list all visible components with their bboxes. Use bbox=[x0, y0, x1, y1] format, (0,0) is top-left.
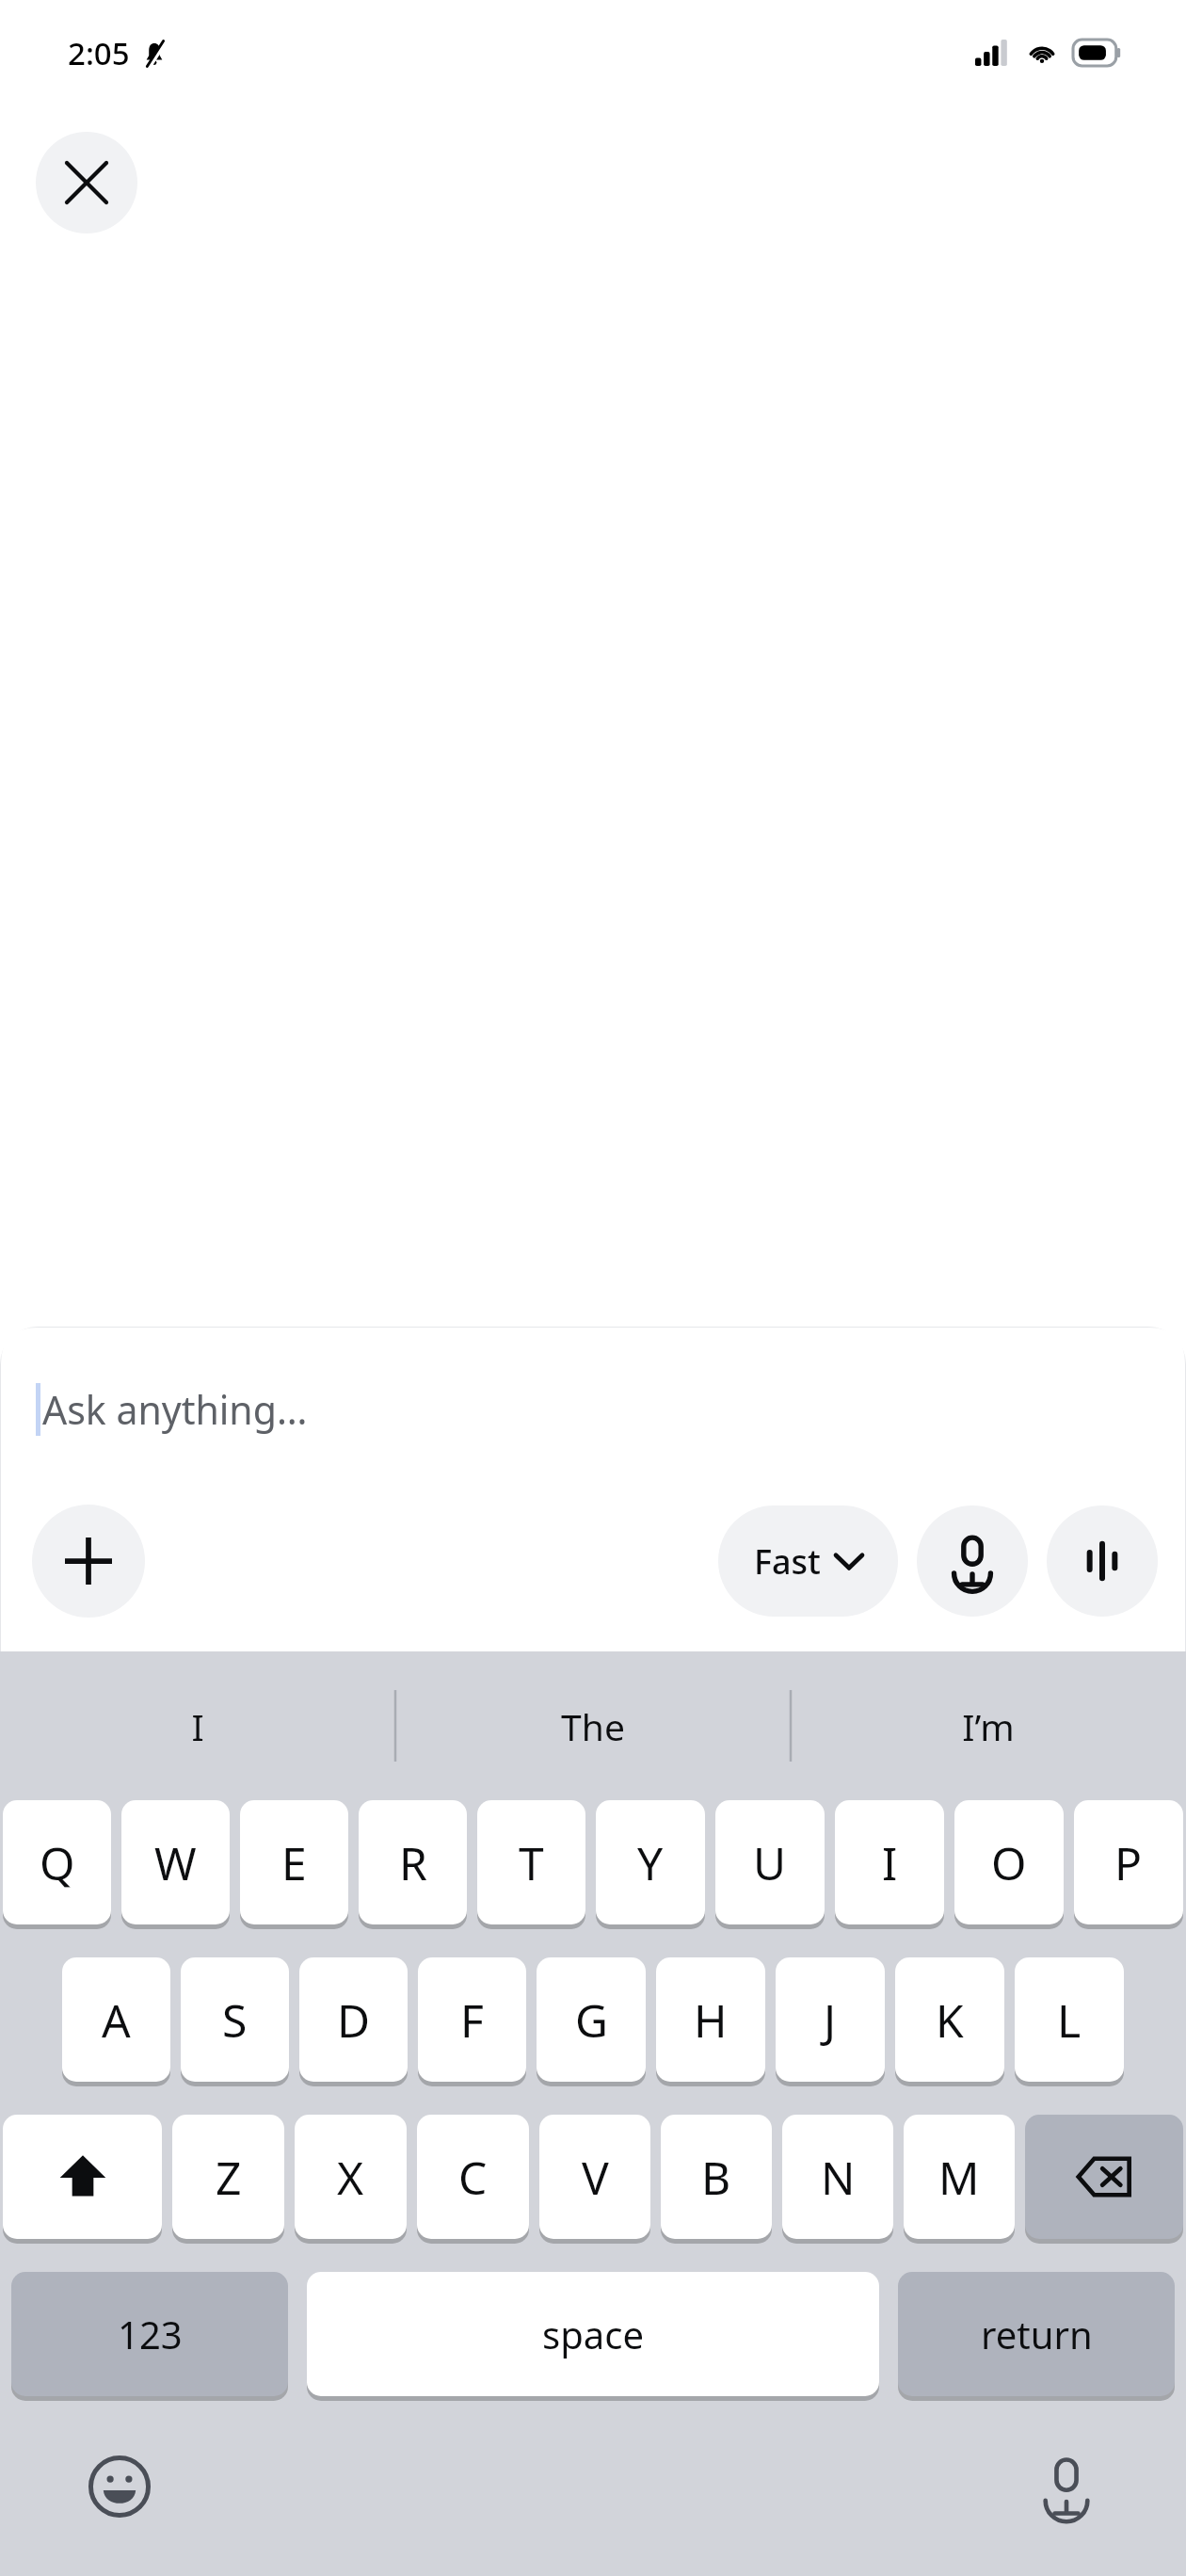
button[interactable]: Add attachment bbox=[32, 1505, 145, 1618]
button[interactable]: P bbox=[1074, 1800, 1183, 1924]
button[interactable]: The bbox=[395, 1651, 791, 1800]
staticText: O bbox=[991, 1832, 1027, 1893]
staticText: B bbox=[701, 2147, 731, 2208]
staticText: E bbox=[281, 1832, 307, 1893]
staticText: H bbox=[694, 1989, 728, 2051]
staticText: T bbox=[519, 1832, 544, 1893]
staticText: F bbox=[460, 1989, 484, 2051]
other: Backspace bbox=[1025, 2115, 1183, 2244]
staticText: P bbox=[1114, 1832, 1143, 1893]
staticText: N bbox=[821, 2147, 856, 2208]
button[interactable]: Z bbox=[172, 2115, 284, 2239]
button[interactable]: S bbox=[181, 1957, 289, 2082]
button[interactable]: space bbox=[307, 2272, 879, 2396]
button[interactable]: Q bbox=[3, 1800, 111, 1924]
button[interactable]: Live voice mode bbox=[1047, 1505, 1158, 1617]
button[interactable]: return bbox=[898, 2272, 1175, 2396]
staticText: 2:05 bbox=[68, 32, 130, 74]
staticText: J bbox=[824, 1989, 837, 2051]
button[interactable]: X bbox=[295, 2115, 407, 2239]
staticText: 123 bbox=[118, 2309, 183, 2359]
staticText: I’m bbox=[962, 1701, 1015, 1751]
button[interactable]: E bbox=[240, 1800, 348, 1924]
button[interactable]: I’m bbox=[791, 1651, 1186, 1800]
button[interactable]: D bbox=[299, 1957, 408, 2082]
button[interactable]: Y bbox=[596, 1800, 705, 1924]
button[interactable]: V bbox=[539, 2115, 650, 2239]
staticText: Fast bbox=[754, 1538, 821, 1585]
staticText: M bbox=[938, 2147, 980, 2208]
button[interactable]: I bbox=[0, 1651, 395, 1800]
staticText: Z bbox=[216, 2147, 242, 2208]
staticText: L bbox=[1057, 1989, 1082, 2051]
staticText: W bbox=[154, 1832, 197, 1893]
button[interactable]: M bbox=[904, 2115, 1015, 2239]
button[interactable]: Close bbox=[36, 132, 137, 233]
button[interactable]: L bbox=[1015, 1957, 1124, 2082]
button[interactable]: N bbox=[782, 2115, 893, 2239]
staticText: U bbox=[753, 1832, 787, 1893]
button[interactable]: W bbox=[121, 1800, 230, 1924]
button[interactable]: U bbox=[715, 1800, 825, 1924]
staticText: Q bbox=[40, 1832, 75, 1893]
staticText: V bbox=[582, 2147, 609, 2208]
button[interactable]: B bbox=[661, 2115, 772, 2239]
button[interactable]: F bbox=[418, 1957, 526, 2082]
other: Shift bbox=[3, 2115, 162, 2244]
staticText: space bbox=[542, 2309, 644, 2359]
staticText: Y bbox=[637, 1832, 664, 1893]
staticText: I bbox=[882, 1832, 898, 1893]
staticText: Ask anything… bbox=[42, 1383, 308, 1436]
button[interactable] bbox=[3, 2115, 162, 2239]
button[interactable]: J bbox=[776, 1957, 885, 2082]
button[interactable]: Fast bbox=[718, 1505, 898, 1617]
button[interactable]: R bbox=[359, 1800, 467, 1924]
staticText: C bbox=[458, 2147, 488, 2208]
button[interactable]: 123 bbox=[11, 2272, 288, 2396]
button[interactable]: C bbox=[417, 2115, 529, 2239]
staticText: return bbox=[981, 2309, 1093, 2359]
button[interactable]: O bbox=[954, 1800, 1064, 1924]
staticText: I bbox=[191, 1701, 204, 1751]
staticText: X bbox=[337, 2147, 364, 2208]
button[interactable]: Dictation bbox=[1024, 2444, 1109, 2529]
button[interactable]: Voice input bbox=[917, 1505, 1028, 1617]
staticText: G bbox=[575, 1989, 608, 2051]
button[interactable]: T bbox=[477, 1800, 585, 1924]
staticText: The bbox=[561, 1701, 625, 1751]
button[interactable] bbox=[1025, 2115, 1183, 2239]
button[interactable]: Emoji keyboard bbox=[77, 2444, 162, 2529]
button[interactable]: G bbox=[537, 1957, 646, 2082]
staticText: R bbox=[399, 1832, 427, 1893]
staticText: K bbox=[936, 1989, 964, 2051]
button[interactable]: A bbox=[62, 1957, 170, 2082]
button[interactable]: H bbox=[656, 1957, 765, 2082]
staticText: A bbox=[102, 1989, 131, 2051]
staticText: S bbox=[222, 1989, 248, 2051]
button[interactable]: I bbox=[835, 1800, 944, 1924]
staticText: D bbox=[337, 1989, 371, 2051]
button[interactable]: K bbox=[895, 1957, 1004, 2082]
